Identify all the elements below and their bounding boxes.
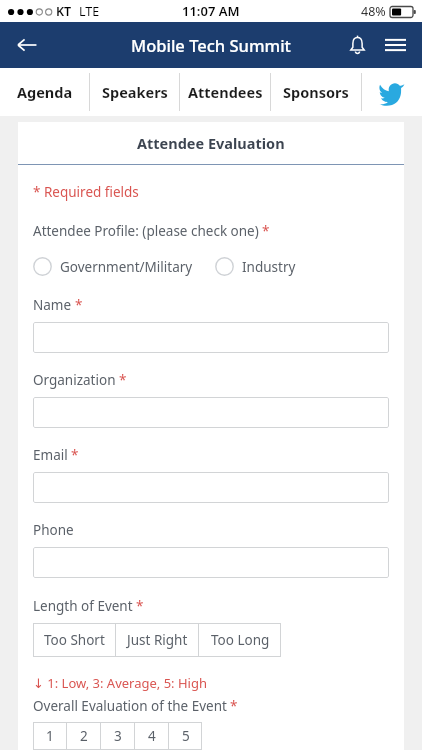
staticText: * <box>262 222 270 240</box>
button[interactable]: Too Long <box>199 623 281 657</box>
staticText: Agenda <box>17 82 73 102</box>
staticText: * <box>119 371 127 389</box>
staticText: Sponsors <box>283 82 349 102</box>
staticText: Industry <box>242 258 296 276</box>
staticText: * Required fields <box>33 183 139 201</box>
staticText: Mobile Tech Summit <box>131 34 291 56</box>
staticText: Just Right <box>127 631 188 649</box>
staticText: Length of Event <box>33 597 133 615</box>
staticText: Too Long <box>211 631 270 649</box>
staticText: Too Short <box>44 631 105 649</box>
staticText: Name <box>33 296 72 314</box>
button[interactable]: Back <box>6 24 48 66</box>
staticText: KT <box>56 3 72 20</box>
staticText: * <box>75 296 83 314</box>
button[interactable]: Menu <box>376 26 414 64</box>
button[interactable]: Attendees <box>180 68 270 116</box>
staticText: 3 <box>114 727 122 745</box>
button[interactable]: Industry <box>215 257 296 276</box>
staticText: Attendees <box>188 82 263 102</box>
staticText: Email <box>33 446 68 464</box>
staticText: Attendee Profile: (please check one) <box>33 222 259 240</box>
button[interactable]: Agenda <box>0 68 89 116</box>
staticText: 11:07 AM <box>182 2 240 20</box>
staticText: 4 <box>148 727 156 745</box>
staticText: LTE <box>79 3 100 20</box>
staticText: * <box>230 697 238 715</box>
staticText: * <box>136 597 144 615</box>
staticText: Phone <box>33 521 74 539</box>
button[interactable]: Too Short <box>33 623 115 657</box>
button[interactable]: 1 <box>33 722 66 750</box>
button[interactable]: 3 <box>101 722 134 750</box>
staticText: Attendee Evaluation <box>137 133 285 153</box>
button[interactable]: Speakers <box>90 68 179 116</box>
staticText: ↓ 1: Low, 3: Average, 5: High <box>33 674 208 692</box>
button[interactable]: Government/Military <box>33 257 193 276</box>
button[interactable] <box>33 547 389 578</box>
button[interactable]: 2 <box>67 722 100 750</box>
staticText: 5 <box>182 727 190 745</box>
staticText: 2 <box>80 727 88 745</box>
staticText: Organization <box>33 371 116 389</box>
button[interactable]: Notifications <box>338 26 376 64</box>
button[interactable] <box>33 397 389 428</box>
staticText: 48% <box>361 3 386 20</box>
button[interactable]: 5 <box>169 722 202 750</box>
button[interactable]: Just Right <box>116 623 198 657</box>
staticText: Overall Evaluation of the Event <box>33 697 227 715</box>
button[interactable] <box>33 472 389 503</box>
button[interactable]: 4 <box>135 722 168 750</box>
staticText: * <box>71 446 79 464</box>
staticText: Government/Military <box>60 258 193 276</box>
staticText: 1 <box>46 727 54 745</box>
button[interactable] <box>33 322 389 353</box>
staticText: Speakers <box>102 82 168 102</box>
button[interactable]: Twitter <box>362 68 422 116</box>
button[interactable]: Sponsors <box>271 68 361 116</box>
